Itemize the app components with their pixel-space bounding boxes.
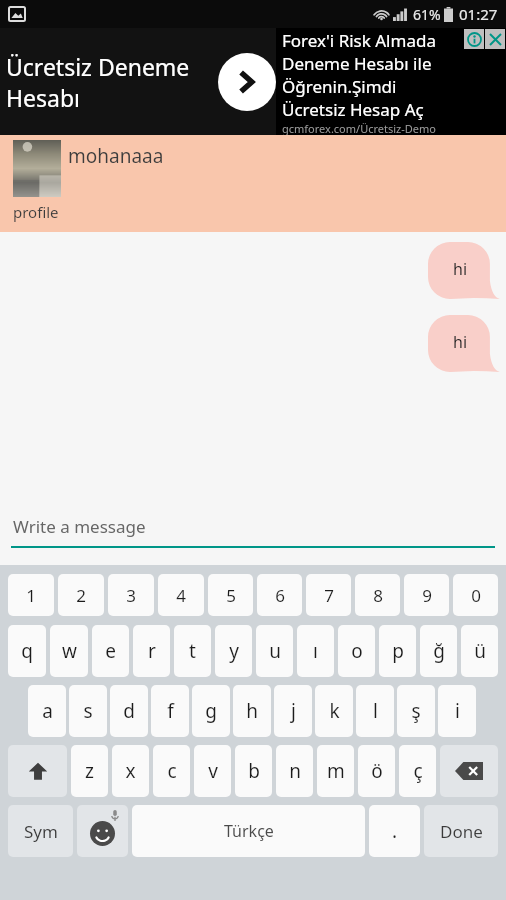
staticText: ö bbox=[371, 758, 383, 784]
staticText: hi bbox=[453, 258, 468, 280]
button[interactable]: ş bbox=[397, 685, 435, 737]
staticText: i bbox=[455, 698, 460, 724]
button[interactable]: c bbox=[153, 745, 190, 797]
button[interactable]: mohanaaa bbox=[0, 135, 506, 232]
button[interactable]: i bbox=[438, 685, 476, 737]
button[interactable]: Open ad bbox=[218, 53, 276, 111]
button[interactable]: z bbox=[71, 745, 108, 797]
staticText: ü bbox=[474, 638, 486, 664]
staticText: d bbox=[123, 698, 135, 724]
button[interactable]: 0 bbox=[453, 574, 498, 616]
staticText: 3 bbox=[126, 584, 136, 607]
button[interactable]: y bbox=[215, 625, 252, 677]
staticText: Öğrenin.Şimdi bbox=[282, 75, 397, 98]
button[interactable]: Emoji and voice input bbox=[77, 805, 128, 857]
staticText: profile bbox=[13, 202, 59, 222]
button[interactable]: . bbox=[369, 805, 420, 857]
button[interactable]: Sym bbox=[8, 805, 73, 857]
button[interactable]: o bbox=[338, 625, 375, 677]
button[interactable]: 4 bbox=[158, 574, 204, 616]
button[interactable]: b bbox=[235, 745, 272, 797]
button[interactable]: 6 bbox=[257, 574, 302, 616]
button[interactable]: a bbox=[28, 685, 66, 737]
staticText: Forex'i Risk Almada bbox=[282, 29, 436, 52]
button[interactable]: hi bbox=[428, 242, 500, 299]
button[interactable]: j bbox=[274, 685, 312, 737]
button[interactable]: 1 bbox=[8, 574, 54, 616]
staticText: l bbox=[373, 698, 378, 724]
staticText: j bbox=[291, 698, 296, 724]
staticText: hi bbox=[453, 331, 468, 353]
staticText: 9 bbox=[422, 584, 432, 607]
staticText: v bbox=[208, 758, 218, 784]
staticText: Ücretsiz Deneme bbox=[6, 51, 190, 82]
button[interactable]: ç bbox=[399, 745, 436, 797]
button[interactable]: h bbox=[233, 685, 271, 737]
button[interactable]: 9 bbox=[404, 574, 449, 616]
staticText: b bbox=[248, 758, 260, 784]
button[interactable]: t bbox=[174, 625, 211, 677]
button[interactable]: Write a message bbox=[0, 497, 506, 565]
button[interactable]: 7 bbox=[306, 574, 351, 616]
button[interactable]: n bbox=[276, 745, 313, 797]
button[interactable]: 2 bbox=[58, 574, 104, 616]
staticText: a bbox=[42, 698, 53, 724]
button[interactable]: ı bbox=[297, 625, 334, 677]
button[interactable]: v bbox=[194, 745, 231, 797]
staticText: y bbox=[229, 638, 239, 664]
button[interactable]: Done bbox=[424, 805, 498, 857]
button[interactable]: Backspace bbox=[440, 745, 498, 797]
staticText: e bbox=[105, 638, 116, 664]
staticText: 8 bbox=[373, 584, 383, 607]
button[interactable]: Ad info bbox=[464, 29, 484, 49]
staticText: Ücretsiz Hesap Aç bbox=[282, 98, 424, 121]
button[interactable]: Türkçe bbox=[132, 805, 365, 857]
button[interactable]: g bbox=[192, 685, 230, 737]
button[interactable]: 5 bbox=[208, 574, 253, 616]
button[interactable]: u bbox=[256, 625, 293, 677]
button[interactable]: d bbox=[110, 685, 148, 737]
staticText: q bbox=[21, 638, 33, 664]
staticText: r bbox=[148, 638, 156, 664]
staticText: Done bbox=[440, 820, 483, 843]
button[interactable]: r bbox=[133, 625, 170, 677]
staticText: 5 bbox=[226, 584, 236, 607]
staticText: 2 bbox=[76, 584, 86, 607]
staticText: Deneme Hesabı ile bbox=[282, 52, 432, 75]
staticText: g bbox=[205, 698, 217, 724]
button[interactable]: l bbox=[356, 685, 394, 737]
staticText: z bbox=[85, 758, 94, 784]
button[interactable]: ö bbox=[358, 745, 395, 797]
staticText: h bbox=[246, 698, 258, 724]
button[interactable]: Close ad bbox=[485, 29, 505, 49]
staticText: t bbox=[189, 638, 196, 664]
staticText: 7 bbox=[324, 584, 334, 607]
button[interactable]: hi bbox=[428, 315, 500, 372]
staticText: 4 bbox=[176, 584, 186, 607]
staticText: Sym bbox=[24, 820, 58, 843]
button[interactable]: x bbox=[112, 745, 149, 797]
staticText: x bbox=[125, 758, 136, 784]
button[interactable]: k bbox=[315, 685, 353, 737]
staticText: ğ bbox=[433, 638, 445, 664]
button[interactable]: m bbox=[317, 745, 354, 797]
button[interactable]: ü bbox=[461, 625, 498, 677]
staticText: u bbox=[269, 638, 281, 664]
button[interactable]: w bbox=[50, 625, 88, 677]
button[interactable]: 8 bbox=[355, 574, 400, 616]
staticText: n bbox=[289, 758, 301, 784]
staticText: ı bbox=[313, 638, 318, 664]
button[interactable]: ğ bbox=[420, 625, 457, 677]
button[interactable]: f bbox=[151, 685, 189, 737]
staticText: k bbox=[329, 698, 340, 724]
staticText: 6 bbox=[275, 584, 285, 607]
button[interactable]: e bbox=[92, 625, 129, 677]
button[interactable]: p bbox=[379, 625, 416, 677]
button[interactable]: Ücretsiz Deneme bbox=[0, 28, 506, 135]
staticText: 1 bbox=[26, 584, 36, 607]
button[interactable]: 3 bbox=[108, 574, 154, 616]
button[interactable]: s bbox=[69, 685, 107, 737]
staticText: c bbox=[167, 758, 177, 784]
button[interactable]: q bbox=[8, 625, 46, 677]
button[interactable]: Shift bbox=[8, 745, 67, 797]
